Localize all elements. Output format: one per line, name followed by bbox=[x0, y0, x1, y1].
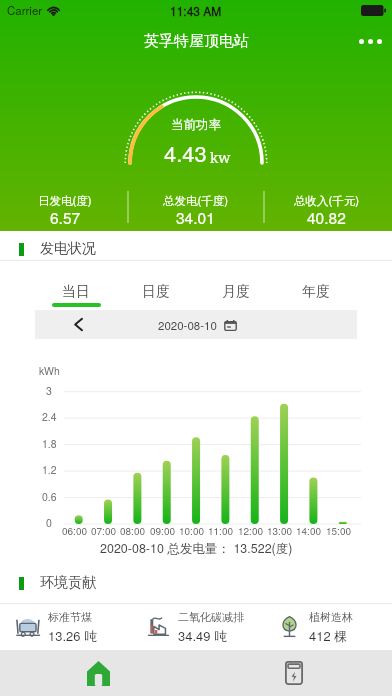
staticText: 15:00 bbox=[326, 524, 352, 538]
staticText: 40.82 bbox=[307, 206, 346, 228]
staticText: 年度 bbox=[302, 283, 330, 301]
staticText: 2020-08-10 bbox=[158, 317, 217, 333]
staticText: 日发电(度) bbox=[38, 192, 92, 209]
staticText: 06:00 bbox=[62, 524, 88, 538]
button[interactable]: 日发电(度) bbox=[0, 190, 130, 231]
button[interactable]: Previous day bbox=[35, 310, 357, 339]
staticText: 总收入(千元) bbox=[294, 192, 360, 209]
button[interactable]: 标准节煤 bbox=[0, 604, 130, 650]
button[interactable]: Previous day bbox=[35, 310, 121, 339]
staticText: 1.2 bbox=[42, 462, 57, 477]
staticText: 月度 bbox=[222, 283, 250, 301]
staticText: 环境贡献 bbox=[40, 574, 96, 592]
staticText: 当前功率 bbox=[171, 117, 221, 133]
staticText: 08:00 bbox=[120, 524, 146, 538]
staticText: 07:00 bbox=[91, 524, 117, 538]
staticText: 标准节煤 bbox=[48, 610, 92, 624]
staticText: 13:00 bbox=[267, 524, 293, 538]
staticText: 2.4 bbox=[42, 409, 57, 424]
button[interactable]: 日度 bbox=[116, 261, 196, 310]
staticText: kWh bbox=[39, 363, 60, 378]
staticText: 发电状况 bbox=[40, 240, 96, 258]
button[interactable]: 当日 bbox=[36, 261, 116, 310]
staticText: 4.43 bbox=[164, 137, 207, 169]
staticText: 0.6 bbox=[42, 489, 57, 504]
button[interactable]: 植树造林 bbox=[261, 604, 392, 650]
staticText: 0 bbox=[46, 515, 52, 530]
staticText: 3 bbox=[46, 383, 52, 398]
staticText: 12:00 bbox=[238, 524, 264, 538]
staticText: 09:00 bbox=[150, 524, 176, 538]
staticText: 当日 bbox=[62, 283, 90, 301]
staticText: 二氧化碳减排 bbox=[178, 610, 244, 624]
staticText: 11:43 AM bbox=[170, 2, 222, 19]
staticText: 日度 bbox=[142, 283, 170, 301]
button[interactable]: Devices bbox=[196, 650, 392, 696]
staticText: 植树造林 bbox=[309, 610, 353, 624]
staticText: 英孚特屋顶电站 bbox=[144, 32, 249, 51]
staticText: 6.57 bbox=[50, 206, 81, 228]
staticText: 412 棵 bbox=[309, 626, 348, 645]
button[interactable]: 二氧化碳减排 bbox=[130, 604, 261, 650]
staticText: 34.01 bbox=[176, 206, 215, 228]
staticText: 11:00 bbox=[208, 524, 234, 538]
staticText: 34.49 吨 bbox=[178, 626, 228, 645]
staticText: 1.8 bbox=[42, 436, 57, 451]
staticText: 10:00 bbox=[179, 524, 205, 538]
staticText: 2020-08-10 总发电量： 13.522(度) bbox=[100, 539, 293, 557]
button[interactable]: 总发电(千度) bbox=[130, 190, 261, 231]
staticText: kw bbox=[210, 148, 231, 167]
button[interactable]: Home bbox=[0, 650, 196, 696]
button[interactable]: 月度 bbox=[196, 261, 276, 310]
button[interactable]: 年度 bbox=[276, 261, 356, 310]
staticText: Carrier bbox=[7, 2, 43, 18]
button[interactable]: 总收入(千元) bbox=[261, 190, 392, 231]
staticText: 总发电(千度) bbox=[163, 192, 229, 209]
staticText: 14:00 bbox=[296, 524, 322, 538]
staticText: 13.26 吨 bbox=[48, 626, 98, 645]
button[interactable]: More options bbox=[348, 19, 392, 63]
